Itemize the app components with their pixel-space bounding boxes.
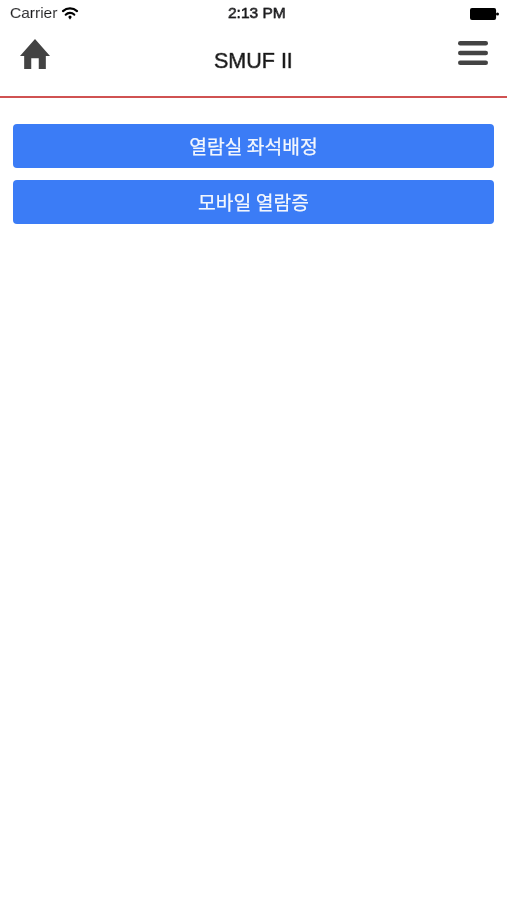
other: Wi-Fi [63,7,77,19]
button[interactable]: 모바일 열람증 [13,180,494,224]
staticText: Carrier [10,4,58,21]
staticText: 열람실 좌석배정 [189,132,318,160]
button[interactable]: Menu [451,31,495,75]
button[interactable]: 열람실 좌석배정 [13,124,494,168]
staticText: 모바일 열람증 [198,188,309,216]
staticText: Carrier [10,4,58,21]
staticText: SMUF II [214,49,293,73]
other: Battery full [470,8,499,20]
staticText: 2:13 PM [228,4,286,21]
button[interactable]: Home [13,32,57,76]
staticText: SMUF II [214,49,293,73]
staticText: 2:13 PM [228,4,286,21]
